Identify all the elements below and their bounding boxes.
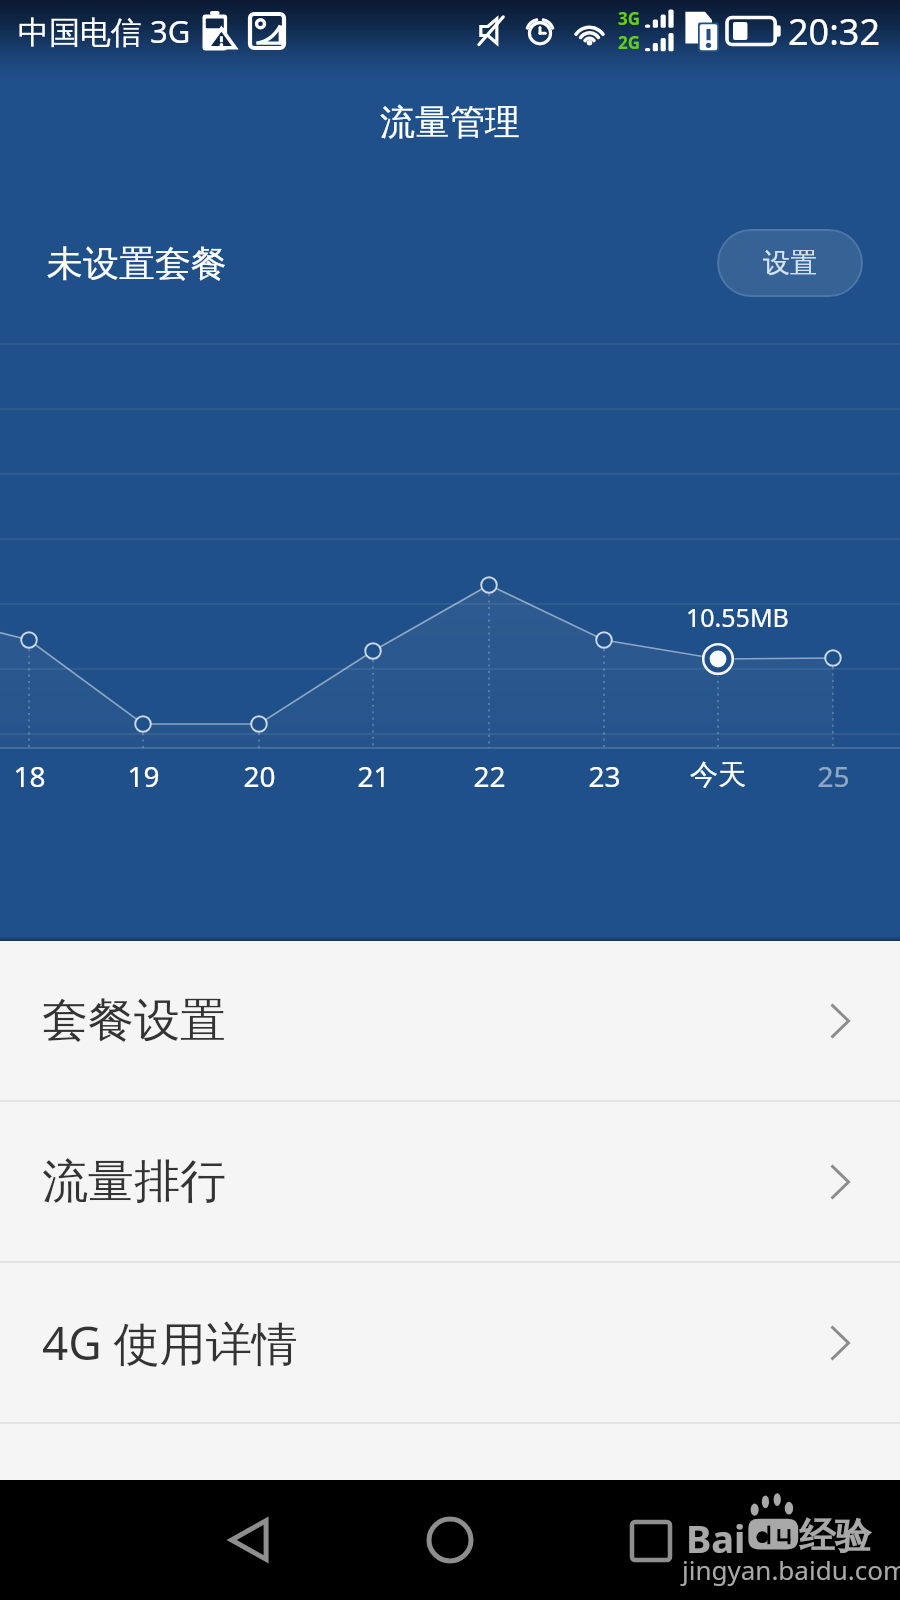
staticText: 未设置套餐 [47,241,227,286]
button[interactable]: Recents [630,1520,672,1562]
staticText: 10.55MB [686,600,789,634]
button[interactable]: Home [410,1500,490,1580]
staticText: 22 [473,757,506,795]
button[interactable]: Back [210,1500,290,1580]
staticText: Bai [686,1512,746,1564]
staticText: 流量管理 [380,100,520,144]
staticText: 今天 [690,757,746,792]
staticText: 20:32 [788,7,881,56]
staticText: 4G 使用详情 [42,1311,298,1374]
staticText: 23 [588,757,621,795]
staticText: 套餐设置 [42,992,226,1050]
button[interactable]: 套餐设置 [0,941,900,1100]
staticText: 21 [357,757,390,795]
staticText: 19 [127,757,160,795]
staticText: 2G [618,31,641,54]
staticText: 18 [13,757,46,795]
staticText: 中国电信 3G [18,10,191,52]
staticText: 流量排行 [42,1153,226,1211]
staticText: 3G [618,7,641,30]
button[interactable]: 4G 使用详情 [0,1263,900,1422]
button[interactable]: 设置 Settings [717,229,863,297]
staticText: jingyan.baidu.com [682,1552,900,1587]
staticText: 设置 [763,246,817,280]
staticText: 经验 [799,1513,871,1558]
staticText: 25 [817,757,850,795]
button[interactable]: 流量排行 [0,1102,900,1261]
staticText: 20 [243,757,276,795]
